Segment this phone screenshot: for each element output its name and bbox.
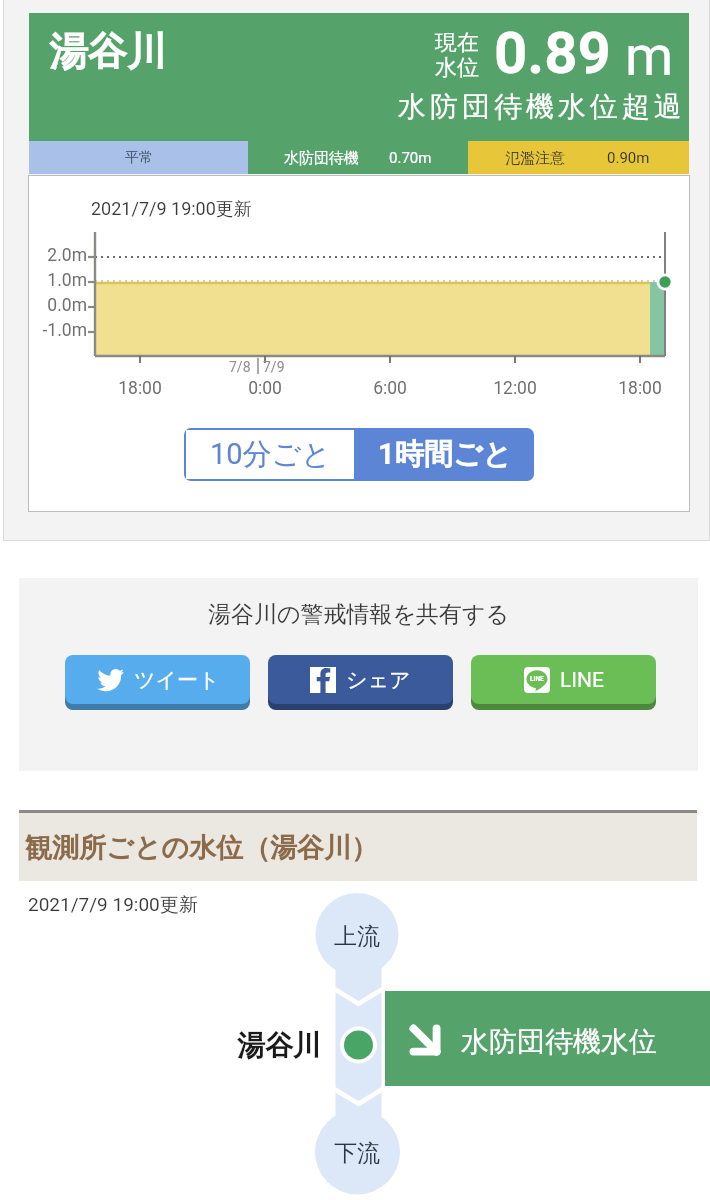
staticText: 氾濫注意 bbox=[505, 149, 565, 168]
staticText: 0.89 bbox=[494, 19, 611, 87]
staticText: 水防団待機水位超過 bbox=[396, 89, 684, 124]
staticText: LINE bbox=[560, 668, 604, 693]
button[interactable]: LINE bbox=[471, 655, 656, 704]
staticText: ツイート bbox=[134, 667, 220, 693]
staticText: 下流 bbox=[334, 1139, 380, 1168]
staticText: 18:00 bbox=[118, 378, 162, 399]
staticText: 1時間ごと bbox=[378, 436, 512, 473]
staticText: 18:00 bbox=[618, 378, 662, 399]
staticText: -1.0m bbox=[42, 320, 87, 341]
staticText: 0.70m bbox=[389, 149, 432, 167]
staticText: 水防団待機 bbox=[284, 149, 359, 168]
staticText: シェア bbox=[346, 667, 411, 693]
staticText: 湯谷川の警戒情報を共有する bbox=[208, 600, 510, 629]
staticText: 2021/7/9 19:00更新 bbox=[91, 198, 252, 221]
staticText: LINE bbox=[530, 675, 544, 683]
staticText: 1.0m bbox=[47, 270, 87, 291]
staticText: 7/9 bbox=[263, 359, 285, 375]
staticText: 水防団待機水位 bbox=[461, 1024, 657, 1059]
staticText: 2021/7/9 19:00更新 bbox=[28, 893, 198, 917]
staticText: 0.90m bbox=[607, 149, 650, 167]
staticText: 7/8 bbox=[229, 359, 251, 375]
staticText: 上流 bbox=[334, 922, 380, 951]
button[interactable]: 1時間ごと bbox=[356, 428, 534, 481]
staticText: 水位 bbox=[435, 54, 479, 82]
button[interactable]: シェア bbox=[268, 655, 453, 704]
staticText: 平常 bbox=[125, 149, 153, 167]
button[interactable]: 10分ごと bbox=[184, 428, 356, 481]
staticText: 10分ごと bbox=[210, 436, 331, 473]
staticText: 現在 bbox=[435, 29, 479, 57]
button[interactable]: ツイート bbox=[65, 655, 250, 704]
staticText: 観測所ごとの水位（湯谷川） bbox=[25, 831, 378, 865]
staticText: 12:00 bbox=[493, 378, 537, 399]
staticText: 0.0m bbox=[47, 295, 87, 316]
staticText: 6:00 bbox=[373, 378, 407, 399]
staticText: 0:00 bbox=[248, 378, 282, 399]
staticText: 湯谷川 bbox=[49, 27, 166, 76]
staticText: m bbox=[625, 24, 674, 88]
staticText: 2.0m bbox=[47, 245, 87, 266]
staticText: 湯谷川 bbox=[237, 1028, 321, 1063]
